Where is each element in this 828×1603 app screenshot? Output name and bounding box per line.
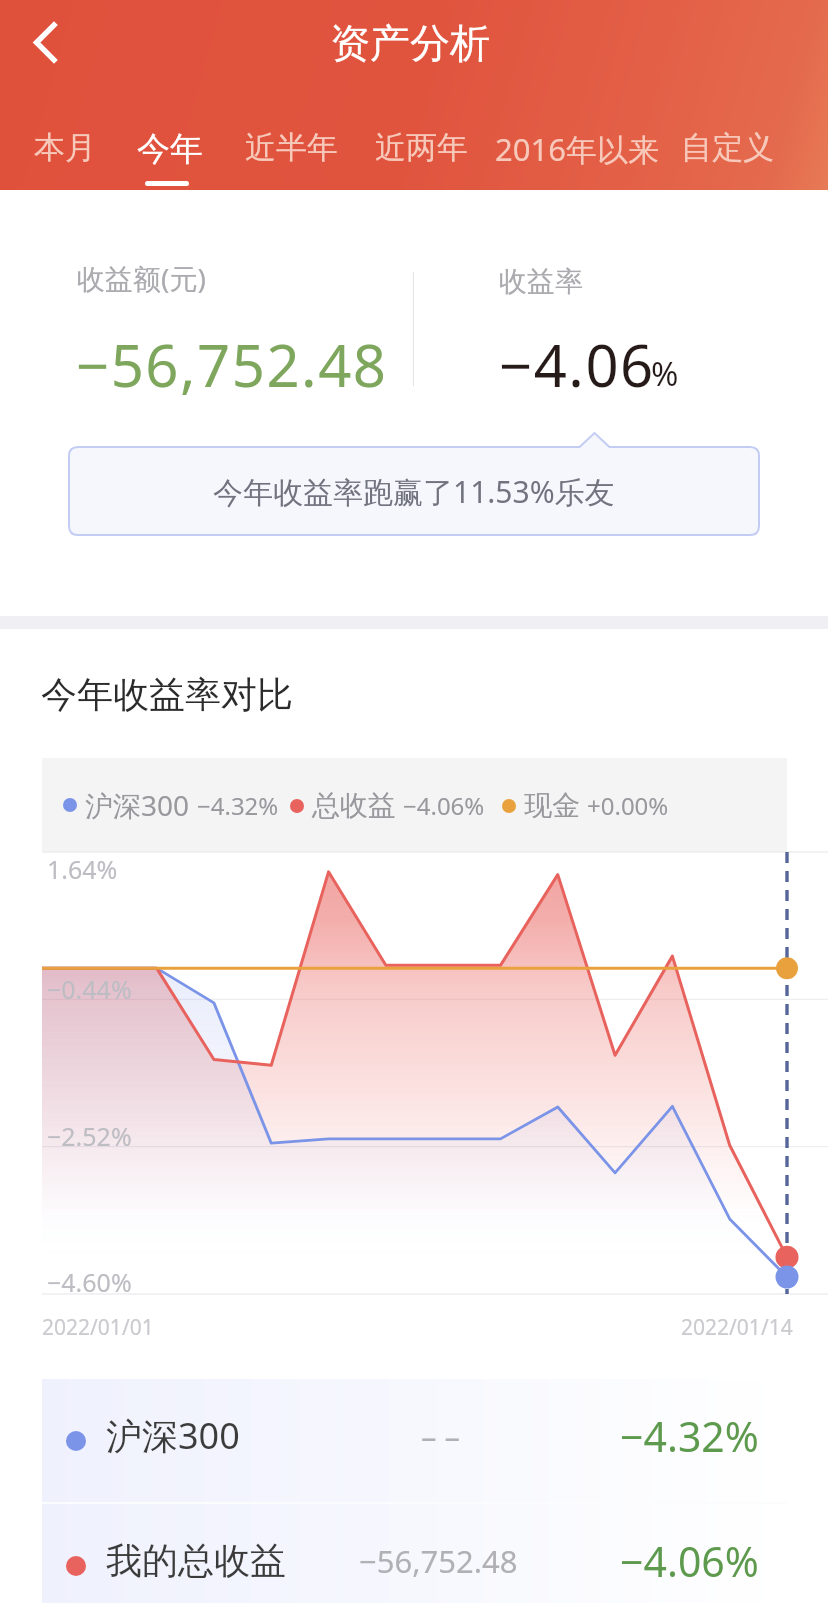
staticText: 收益额(元) <box>77 259 206 297</box>
staticText: 沪深300 <box>85 786 190 824</box>
button[interactable]: 自定义 <box>667 112 788 183</box>
staticText: 自定义 <box>681 128 774 167</box>
staticText: −0.44% <box>47 972 132 1006</box>
staticText: 本月 <box>34 128 96 167</box>
staticText: 今年收益率对比 <box>41 672 293 717</box>
staticText: −4.06 <box>499 325 655 404</box>
staticText: 今年收益率跑赢了11.53%乐友 <box>213 471 615 512</box>
button[interactable]: 2016年以来 <box>481 112 673 186</box>
staticText: −2.52% <box>47 1119 132 1153</box>
staticText: −4.06% <box>403 789 485 822</box>
staticText: 2016年以来 <box>495 128 659 170</box>
staticText: 2022/01/01 <box>42 1313 154 1342</box>
staticText: 今年 <box>137 128 203 170</box>
button[interactable]: 近两年 <box>361 112 482 183</box>
button[interactable]: 本月 <box>20 112 110 183</box>
staticText: −4.32% <box>620 1408 759 1464</box>
staticText: 2022/01/14 <box>681 1313 793 1342</box>
staticText: −56,752.48 <box>359 1540 518 1582</box>
staticText: +0.00% <box>587 789 669 822</box>
staticText: −4.32% <box>197 789 279 822</box>
staticText: −56,752.48 <box>76 325 388 404</box>
staticText: 沪深300 <box>106 1411 240 1460</box>
button[interactable]: 我的总收益 <box>42 1504 787 1603</box>
button[interactable]: Back <box>0 0 90 90</box>
button[interactable]: 沪深300 <box>42 1379 787 1502</box>
staticText: – – <box>421 1415 461 1457</box>
staticText: 1.64% <box>47 852 118 886</box>
staticText: % <box>651 351 679 396</box>
staticText: −4.60% <box>47 1265 132 1299</box>
staticText: 近两年 <box>375 128 468 167</box>
button[interactable]: 今年 <box>123 112 217 186</box>
staticText: 资产分析 <box>330 18 490 68</box>
staticText: 我的总收益 <box>106 1538 286 1583</box>
staticText: 现金 <box>524 788 580 823</box>
staticText: 收益率 <box>499 264 583 299</box>
staticText: 近半年 <box>245 128 338 167</box>
staticText: −4.06% <box>620 1533 759 1589</box>
button[interactable]: 近半年 <box>231 112 352 183</box>
staticText: 总收益 <box>312 788 396 823</box>
